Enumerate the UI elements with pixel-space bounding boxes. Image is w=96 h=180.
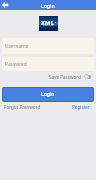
button[interactable]: Password <box>2 57 94 71</box>
staticText: Save Password <box>49 74 81 80</box>
staticText: XML <box>41 19 55 27</box>
staticText: Username <box>5 43 29 50</box>
button[interactable]: Register <box>72 104 90 110</box>
button[interactable]: Back <box>1 1 9 9</box>
staticText: Login <box>41 2 55 9</box>
button[interactable]: Save Password <box>49 72 91 81</box>
button[interactable]: Forgot Password <box>4 104 41 110</box>
staticText: Password <box>5 61 27 68</box>
button[interactable]: Username <box>2 38 94 54</box>
staticText: Login <box>41 91 55 98</box>
button[interactable]: Login <box>3 88 93 101</box>
